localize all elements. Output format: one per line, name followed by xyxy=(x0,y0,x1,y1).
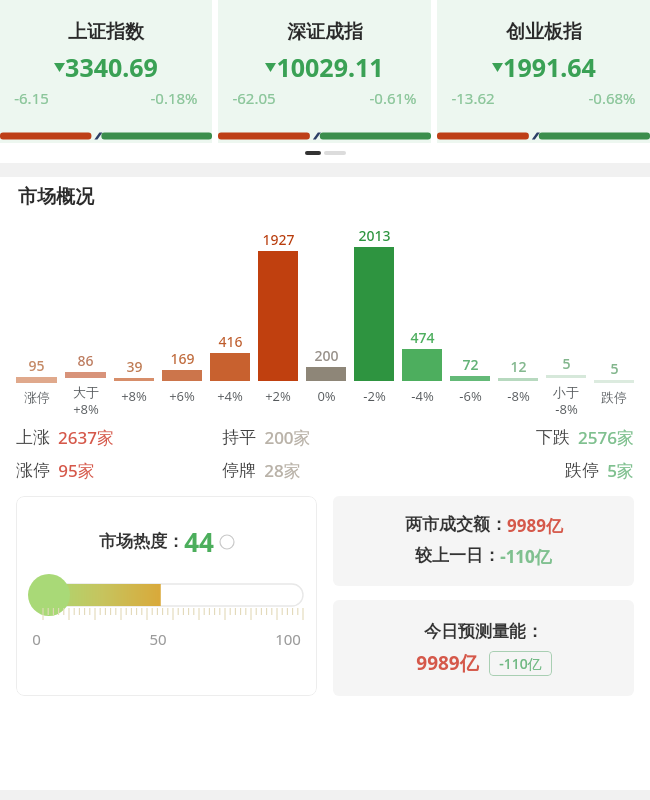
button[interactable]: 1927 xyxy=(254,226,302,418)
staticText: 474 xyxy=(410,328,435,347)
staticText: 上证指数 xyxy=(68,20,144,44)
staticText: 下跌 xyxy=(536,427,570,448)
staticText: 2576家 xyxy=(578,426,634,449)
staticText: -110亿 xyxy=(499,654,542,673)
staticText: 深证成指 xyxy=(287,20,363,44)
staticText: 上涨 xyxy=(16,427,50,448)
staticText: 市场热度： xyxy=(99,531,184,552)
staticText: -0.61% xyxy=(369,88,417,108)
staticText: 9989亿 xyxy=(507,514,563,537)
staticText: 72 xyxy=(462,355,479,374)
staticText: 12 xyxy=(510,357,527,376)
button[interactable]: 市场热度： xyxy=(16,496,317,696)
button[interactable]: 持平 xyxy=(222,426,428,449)
staticText: -110亿 xyxy=(500,545,552,568)
staticText: 50 xyxy=(149,629,167,649)
button[interactable]: 上涨 xyxy=(16,426,222,449)
staticText: 停牌 xyxy=(222,460,256,481)
staticText: 创业板指 xyxy=(506,20,582,44)
staticText: 200 xyxy=(314,346,339,365)
staticText: 小于 xyxy=(553,384,579,400)
staticText: 2013 xyxy=(358,226,391,245)
staticText: -8% xyxy=(507,387,530,405)
button[interactable]: 12 xyxy=(494,226,542,418)
staticText: 100 xyxy=(275,629,301,649)
staticText: 28家 xyxy=(264,459,301,482)
staticText: -0.18% xyxy=(150,88,198,108)
staticText: 39 xyxy=(126,357,143,376)
button[interactable]: 2013 xyxy=(350,226,398,418)
button[interactable]: 跌停 xyxy=(428,459,634,482)
staticText: 95 xyxy=(28,356,45,375)
staticText: 9989亿 xyxy=(416,650,479,676)
staticText: 3340.69 xyxy=(65,50,158,84)
button[interactable]: 下跌 xyxy=(428,426,634,449)
staticText: -62.05 xyxy=(232,88,276,108)
staticText: -13.62 xyxy=(451,88,495,108)
other: 市场热度说明 xyxy=(220,535,234,549)
staticText: 跌停 xyxy=(565,460,599,481)
staticText: 44 xyxy=(184,524,214,559)
button[interactable]: 416 xyxy=(206,226,254,418)
staticText: 0% xyxy=(317,387,336,405)
button[interactable]: 95 xyxy=(12,228,61,418)
button[interactable]: 5 xyxy=(590,228,638,418)
staticText: 1927 xyxy=(262,230,295,249)
staticText: -6.15 xyxy=(14,88,49,108)
staticText: 5 xyxy=(562,354,571,373)
staticText: 0 xyxy=(32,629,41,649)
staticText: 5家 xyxy=(607,459,634,482)
staticText: 跌停 xyxy=(601,389,627,405)
button[interactable]: 5 xyxy=(542,223,590,418)
button[interactable]: 涨停 xyxy=(16,459,222,482)
staticText: 10029.11 xyxy=(276,50,384,84)
staticText: +8% xyxy=(73,400,99,418)
staticText: 市场概况 xyxy=(18,185,94,209)
staticText: 2637家 xyxy=(58,426,114,449)
button[interactable]: 深证成指 xyxy=(218,0,431,143)
button[interactable]: 两市成交额： xyxy=(333,496,634,586)
staticText: +4% xyxy=(217,387,243,405)
staticText: -4% xyxy=(411,387,434,405)
staticText: +8% xyxy=(121,387,147,405)
staticText: +6% xyxy=(169,387,195,405)
button[interactable]: 上证指数 xyxy=(0,0,212,143)
button[interactable]: 169 xyxy=(158,226,206,418)
staticText: 200家 xyxy=(264,426,311,449)
button[interactable]: 474 xyxy=(398,226,446,418)
staticText: 两市成交额： xyxy=(405,514,507,535)
staticText: 持平 xyxy=(222,427,256,448)
staticText: -6% xyxy=(459,387,482,405)
staticText: 86 xyxy=(77,351,94,370)
button[interactable]: 今日预测量能： xyxy=(333,600,634,696)
button[interactable]: 创业板指 xyxy=(437,0,650,143)
button[interactable]: 72 xyxy=(446,226,494,418)
staticText: 大于 xyxy=(73,384,99,400)
staticText: 95家 xyxy=(58,459,95,482)
staticText: 涨停 xyxy=(24,389,50,405)
staticText: 涨停 xyxy=(16,460,50,481)
button[interactable]: 停牌 xyxy=(222,459,428,482)
button[interactable]: 86 xyxy=(61,223,110,418)
staticText: 416 xyxy=(218,332,243,351)
staticText: 169 xyxy=(170,349,195,368)
staticText: -0.68% xyxy=(588,88,636,108)
button[interactable]: 200 xyxy=(302,226,350,418)
staticText: +2% xyxy=(265,387,291,405)
button[interactable]: 39 xyxy=(110,226,158,418)
staticText: 5 xyxy=(610,359,619,378)
staticText: 较上一日： xyxy=(415,545,500,566)
staticText: 今日预测量能： xyxy=(424,621,543,642)
staticText: -8% xyxy=(555,400,578,418)
staticText: -2% xyxy=(363,387,386,405)
staticText: 1991.64 xyxy=(503,50,596,84)
